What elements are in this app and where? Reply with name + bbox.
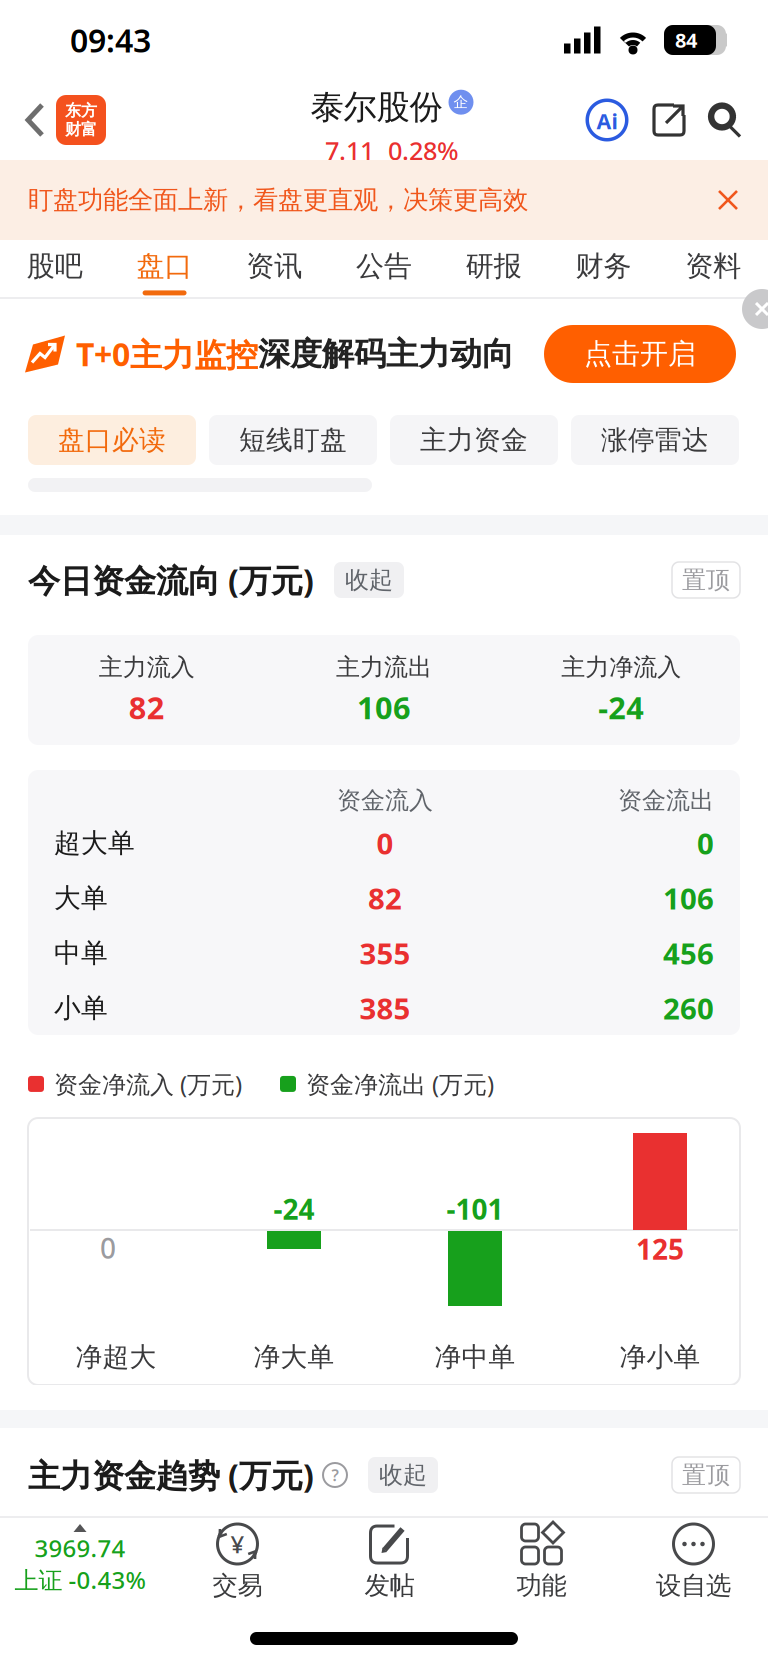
button[interactable]: 功能 bbox=[465, 1522, 617, 1601]
staticText: 财富 bbox=[65, 119, 97, 139]
staticText: 09:43 bbox=[70, 19, 151, 61]
staticText: 0 bbox=[376, 823, 393, 862]
button[interactable]: 股吧 bbox=[0, 240, 110, 297]
staticText: 东方 bbox=[65, 101, 97, 120]
staticText: 125 bbox=[636, 1230, 684, 1268]
staticText: 净中单 bbox=[434, 1341, 515, 1373]
button[interactable]: 收起 bbox=[368, 1457, 438, 1493]
button[interactable]: 3969.74 bbox=[0, 1522, 161, 1596]
staticText: 置顶 bbox=[682, 565, 730, 595]
staticText: 中单 bbox=[54, 937, 108, 969]
button[interactable]: Share bbox=[652, 103, 686, 137]
staticText: 收起 bbox=[345, 565, 393, 595]
button[interactable]: ¥ bbox=[161, 1522, 313, 1601]
staticText: 研报 bbox=[466, 249, 522, 283]
staticText: 106 bbox=[357, 687, 411, 728]
staticText: 净大单 bbox=[253, 1341, 334, 1373]
staticText: 深度解码主力动向 bbox=[258, 334, 514, 374]
staticText: 涨停雷达 bbox=[601, 424, 709, 456]
staticText: 7.11 0.28% bbox=[325, 134, 459, 167]
staticText: T+0主力监控 bbox=[76, 333, 258, 375]
staticText: 资金流出 bbox=[618, 786, 714, 815]
button[interactable]: 资料 bbox=[658, 240, 768, 297]
button[interactable]: 短线盯盘 bbox=[209, 415, 377, 465]
staticText: 置顶 bbox=[682, 1460, 730, 1490]
button[interactable]: 研报 bbox=[439, 240, 549, 297]
button[interactable]: 点击开启 bbox=[544, 325, 736, 383]
staticText: 收起 bbox=[379, 1460, 427, 1490]
staticText: 资讯 bbox=[246, 249, 302, 283]
staticText: 上证 -0.43% bbox=[14, 1564, 145, 1596]
staticText: Ai bbox=[596, 107, 617, 135]
staticText: 资金净流出 (万元) bbox=[306, 1068, 494, 1100]
button[interactable]: 盘口 bbox=[110, 240, 219, 297]
staticText: -24 bbox=[598, 687, 644, 728]
staticText: 短线盯盘 bbox=[239, 424, 347, 456]
staticText: 主力流入 bbox=[99, 652, 195, 682]
button[interactable]: 公告 bbox=[329, 240, 439, 297]
staticText: -101 bbox=[446, 1190, 503, 1228]
button[interactable]: 东方财富 bbox=[56, 95, 106, 145]
staticText: 盯盘功能全面上新，看盘更直观，决策更高效 bbox=[28, 184, 528, 215]
staticText: 交易 bbox=[212, 1570, 262, 1601]
staticText: 资金流入 bbox=[337, 786, 433, 815]
staticText: 0 bbox=[100, 1229, 116, 1267]
button[interactable]: Search bbox=[708, 102, 742, 137]
button[interactable]: 主力资金 bbox=[390, 415, 558, 465]
staticText: -24 bbox=[273, 1190, 314, 1228]
staticText: 公告 bbox=[356, 249, 412, 283]
staticText: 主力流出 bbox=[336, 652, 432, 682]
staticText: 82 bbox=[129, 687, 165, 728]
staticText: 106 bbox=[663, 878, 714, 917]
staticText: 盘口必读 bbox=[58, 424, 166, 456]
staticText: 主力资金趋势 (万元) bbox=[28, 1454, 314, 1496]
staticText: 主力净流入 bbox=[561, 652, 681, 682]
button[interactable]: 涨停雷达 bbox=[571, 415, 739, 465]
staticText: 泰尔股份 bbox=[310, 87, 442, 128]
button[interactable]: 设自选 bbox=[617, 1522, 768, 1601]
button[interactable]: 财务 bbox=[549, 240, 658, 297]
staticText: 82 bbox=[368, 878, 402, 917]
staticText: 超大单 bbox=[54, 827, 135, 859]
staticText: ¥ bbox=[230, 1528, 244, 1560]
staticText: 主力资金 bbox=[420, 424, 528, 456]
staticText: 84 bbox=[675, 27, 697, 53]
staticText: 大单 bbox=[54, 882, 108, 914]
button[interactable]: 发帖 bbox=[313, 1522, 465, 1601]
button[interactable]: 置顶 bbox=[672, 1457, 740, 1493]
staticText: 企 bbox=[453, 93, 468, 111]
staticText: 盘口 bbox=[137, 249, 193, 283]
staticText: 385 bbox=[359, 988, 410, 1027]
button[interactable]: 资讯 bbox=[219, 240, 329, 297]
button[interactable]: Back bbox=[0, 103, 56, 137]
staticText: 点击开启 bbox=[584, 337, 696, 371]
staticText: 发帖 bbox=[364, 1570, 414, 1601]
staticText: 456 bbox=[663, 933, 714, 972]
button[interactable]: 置顶 bbox=[672, 562, 740, 598]
button[interactable]: Close ad bbox=[742, 289, 768, 329]
staticText: 355 bbox=[359, 933, 410, 972]
staticText: 净超大 bbox=[75, 1341, 156, 1373]
staticText: 260 bbox=[663, 988, 714, 1027]
button[interactable]: Ai 助手 bbox=[584, 97, 630, 143]
staticText: 今日资金流向 (万元) bbox=[28, 559, 314, 601]
staticText: 功能 bbox=[516, 1570, 566, 1601]
staticText: 资金净流入 (万元) bbox=[54, 1068, 242, 1100]
staticText: 3969.74 bbox=[34, 1532, 125, 1564]
staticText: 股吧 bbox=[27, 249, 83, 283]
staticText: ? bbox=[331, 1464, 338, 1486]
button[interactable]: Close bbox=[718, 190, 768, 210]
staticText: 设自选 bbox=[656, 1570, 731, 1601]
staticText: 小单 bbox=[54, 992, 108, 1024]
staticText: 0 bbox=[697, 823, 714, 862]
staticText: 资料 bbox=[685, 249, 741, 283]
button[interactable]: 盘口必读 bbox=[28, 415, 196, 465]
staticText: 净小单 bbox=[619, 1341, 700, 1373]
staticText: 财务 bbox=[575, 249, 631, 283]
button[interactable]: 收起 bbox=[334, 562, 404, 598]
